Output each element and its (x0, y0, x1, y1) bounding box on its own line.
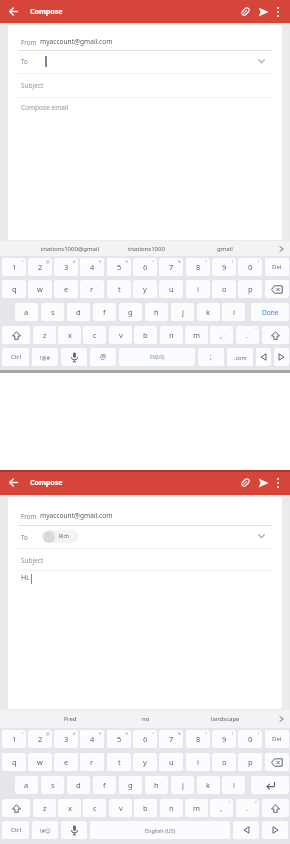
button[interactable]: 0 (238, 730, 262, 748)
button[interactable]: n (160, 799, 183, 817)
button[interactable]: English (US) (90, 821, 230, 839)
button[interactable]: s (41, 303, 64, 321)
button[interactable] (240, 6, 251, 17)
button[interactable] (265, 280, 289, 298)
button[interactable]: d (67, 776, 90, 794)
button[interactable]: p (238, 280, 262, 298)
button[interactable]: x (58, 799, 81, 817)
button[interactable]: y (133, 753, 157, 771)
button[interactable]: m (185, 799, 208, 817)
button[interactable]: v (109, 326, 132, 344)
button[interactable]: f (93, 303, 116, 321)
button[interactable] (276, 477, 280, 489)
button[interactable]: w (28, 753, 52, 771)
button[interactable] (2, 326, 30, 344)
button[interactable] (274, 348, 289, 366)
button[interactable]: ; (198, 348, 224, 366)
button[interactable]: t (107, 753, 131, 771)
button[interactable]: e (54, 280, 78, 298)
button[interactable]: , (210, 326, 233, 344)
button[interactable]: @ (90, 348, 116, 366)
button[interactable]: w (28, 280, 52, 298)
button[interactable]: 7 (159, 258, 183, 276)
button[interactable]: 8 (186, 258, 210, 276)
button[interactable]: g (119, 776, 142, 794)
button[interactable]: n (160, 326, 183, 344)
button[interactable]: 5 (107, 258, 131, 276)
button[interactable] (240, 477, 251, 488)
button[interactable] (256, 348, 271, 366)
button[interactable] (262, 821, 288, 839)
button[interactable]: y (133, 280, 157, 298)
button[interactable]: g (119, 303, 142, 321)
button[interactable]: o (212, 753, 236, 771)
button[interactable]: !@# (32, 348, 58, 366)
button[interactable] (61, 821, 87, 839)
button[interactable]: Ctrl (2, 821, 29, 839)
button[interactable]: i (186, 753, 210, 771)
button[interactable] (258, 59, 265, 64)
button[interactable]: Done (251, 303, 289, 321)
button[interactable]: i (186, 280, 210, 298)
button[interactable]: a (15, 776, 38, 794)
button[interactable]: 1 (2, 258, 26, 276)
button[interactable]: h (145, 776, 168, 794)
button[interactable]: . (236, 326, 259, 344)
button[interactable]: k (197, 776, 220, 794)
button[interactable]: b (134, 799, 157, 817)
button[interactable]: 3 (54, 730, 78, 748)
button[interactable]: 1 (2, 730, 26, 748)
button[interactable]: h (145, 303, 168, 321)
button[interactable]: l (222, 303, 245, 321)
button[interactable]: 0 (238, 258, 262, 276)
button[interactable]: EN(US) (119, 348, 195, 366)
button[interactable]: 2 (28, 730, 52, 748)
button[interactable]: r (80, 280, 104, 298)
button[interactable]: a (15, 303, 38, 321)
button[interactable]: v (109, 799, 132, 817)
button[interactable] (233, 821, 259, 839)
button[interactable]: q (2, 280, 26, 298)
button[interactable]: 6 (133, 258, 157, 276)
button[interactable]: 9 (212, 730, 236, 748)
button[interactable]: s (41, 776, 64, 794)
button[interactable]: Del (265, 730, 289, 748)
button[interactable] (9, 7, 18, 16)
button[interactable]: x (58, 326, 81, 344)
button[interactable]: c (83, 799, 106, 817)
button[interactable] (2, 799, 30, 817)
button[interactable]: 4 (80, 730, 104, 748)
button[interactable]: m (185, 326, 208, 344)
button[interactable]: j (171, 776, 194, 794)
button[interactable]: .com (227, 348, 253, 366)
button[interactable]: Del (265, 258, 289, 276)
button[interactable]: . (236, 799, 259, 817)
button[interactable]: 8 (186, 730, 210, 748)
button[interactable] (262, 326, 289, 344)
button[interactable]: , (210, 799, 233, 817)
button[interactable]: z (33, 326, 56, 344)
button[interactable]: l (222, 776, 245, 794)
button[interactable]: e (54, 753, 78, 771)
button[interactable] (61, 348, 87, 366)
button[interactable]: z (33, 799, 56, 817)
button[interactable] (9, 478, 18, 487)
button[interactable]: j (171, 303, 194, 321)
button[interactable] (262, 799, 289, 817)
button[interactable]: 5 (107, 730, 131, 748)
button[interactable]: 3 (54, 258, 78, 276)
button[interactable]: c (83, 326, 106, 344)
button[interactable] (265, 753, 289, 771)
button[interactable]: r (80, 753, 104, 771)
button[interactable] (251, 776, 289, 794)
button[interactable]: d (67, 303, 90, 321)
button[interactable]: !#☺ (32, 821, 58, 839)
button[interactable]: k (197, 303, 220, 321)
button[interactable] (276, 6, 280, 18)
button[interactable]: 2 (28, 258, 52, 276)
button[interactable]: f (93, 776, 116, 794)
button[interactable]: 7 (159, 730, 183, 748)
button[interactable]: u (159, 753, 183, 771)
button[interactable]: p (238, 753, 262, 771)
button[interactable]: t (107, 280, 131, 298)
